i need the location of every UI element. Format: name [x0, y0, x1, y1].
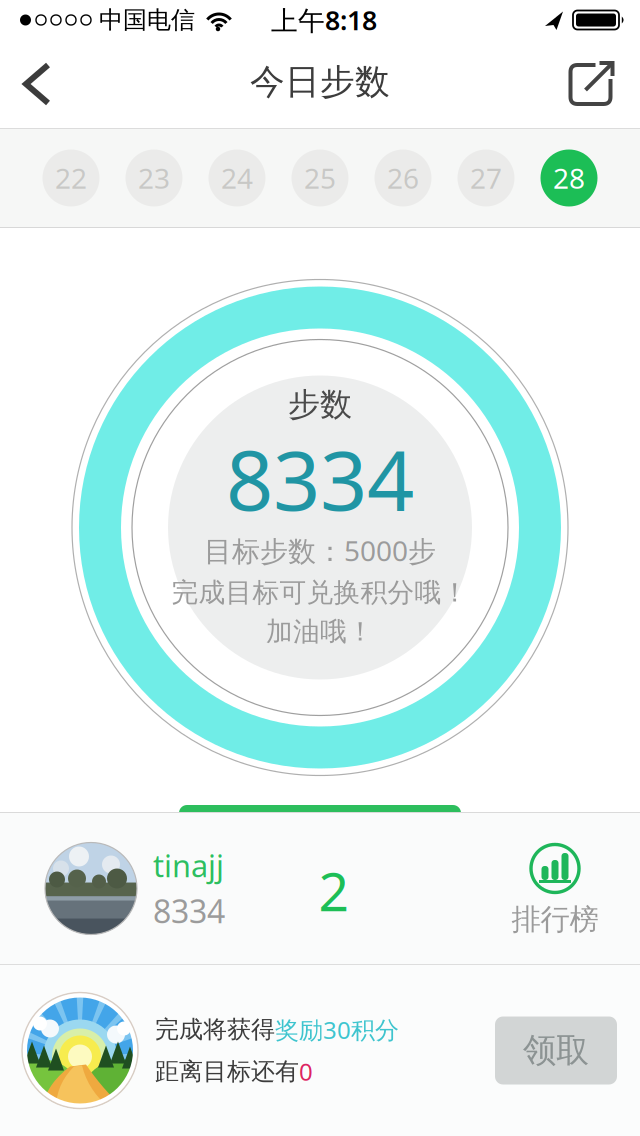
button[interactable]: Day 25 [291, 149, 348, 206]
button[interactable]: Day 28 [540, 149, 597, 206]
staticText: 完成目标可兑换积分哦！ [171, 576, 468, 609]
staticText: 25 [304, 159, 336, 197]
staticText: 8334 [226, 424, 414, 533]
button[interactable]: Day 22 [42, 149, 99, 206]
button[interactable]: Day 23 [125, 149, 182, 206]
staticText: 上午8:18 [271, 2, 377, 38]
staticText: 8334 [153, 890, 225, 932]
staticText: 步数 [288, 385, 352, 424]
staticText: 22 [55, 159, 87, 197]
staticText: 领取 [523, 1030, 589, 1071]
staticText: 24 [221, 159, 253, 197]
staticText: 23 [138, 159, 170, 197]
staticText: 奖励30积分 [275, 1014, 399, 1045]
button[interactable]: Day 27 [457, 149, 514, 206]
staticText: tinajj [153, 845, 224, 886]
staticText: 中国电信 [99, 5, 195, 35]
staticText: 26 [387, 159, 419, 197]
staticText: 0 [299, 1055, 313, 1087]
button[interactable]: Day 26 [374, 149, 431, 206]
button[interactable]: 同步 [179, 805, 461, 821]
staticText: 27 [470, 159, 502, 197]
staticText: 加油哦！ [266, 615, 374, 648]
staticText: 目标步数：5000步 [204, 532, 436, 569]
staticText: 28 [553, 159, 585, 197]
staticText: 完成将获得 [155, 1015, 275, 1044]
button[interactable]: Day 24 [208, 149, 265, 206]
staticText: 2 [318, 855, 349, 926]
staticText: 今日步数 [250, 61, 390, 103]
button[interactable]: Back [0, 42, 54, 126]
button[interactable]: Share [569, 42, 640, 125]
staticText: 距离目标还有 [155, 1057, 299, 1086]
button[interactable]: 排行榜 [511, 843, 598, 937]
button[interactable]: 领取 [495, 1016, 617, 1084]
staticText: 排行榜 [511, 901, 598, 937]
